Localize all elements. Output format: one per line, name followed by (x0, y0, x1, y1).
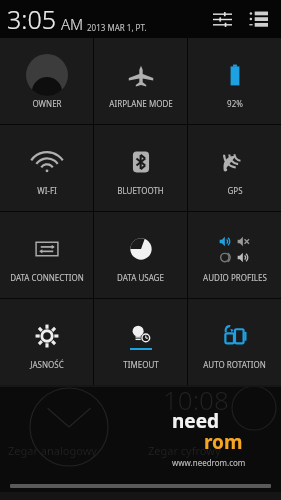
staticText: 10:08 (163, 382, 229, 417)
button[interactable]: Settings (207, 4, 237, 34)
staticText: Zegar cyfrowy (148, 443, 221, 458)
button[interactable]: DATA USAGE (94, 212, 187, 298)
staticText: BLUETOOTH (117, 185, 164, 196)
staticText: DATA CONNECTION (10, 272, 84, 283)
staticText: 2013 MAR 1, PT. (87, 22, 147, 33)
button[interactable]: 92% (188, 38, 281, 124)
staticText: GPS (227, 185, 243, 196)
button[interactable]: GPS (188, 125, 281, 211)
button[interactable]: JASNOŚĆ (0, 299, 93, 385)
staticText: AIRPLANE MODE (109, 98, 173, 109)
staticText: DATA USAGE (117, 272, 164, 283)
staticText: AUDIO PROFILES (203, 272, 267, 283)
staticText: JASNOŚĆ (30, 359, 64, 370)
button[interactable]: AUTO ROTATION (188, 299, 281, 385)
staticText: TIMEOUT (123, 359, 159, 370)
button[interactable]: BLUETOOTH (94, 125, 187, 211)
staticText: AUTO ROTATION (203, 359, 266, 370)
staticText: www.needrom.com (172, 457, 246, 468)
staticText: OWNER (32, 98, 62, 109)
staticText: Zegar analogowy (8, 443, 97, 458)
button[interactable]: TIMEOUT (94, 299, 187, 385)
staticText: rom (204, 429, 243, 455)
button[interactable]: AUDIO PROFILES (188, 212, 281, 298)
button[interactable]: WI-FI (0, 125, 93, 211)
button[interactable]: Notifications (243, 4, 273, 34)
staticText: AM (61, 14, 84, 34)
button[interactable]: DATA CONNECTION (0, 212, 93, 298)
button[interactable]: AIRPLANE MODE (94, 38, 187, 124)
staticText: 3:05 (7, 2, 56, 36)
staticText: WI-FI (37, 185, 57, 196)
staticText: need (172, 408, 220, 434)
button[interactable]: OWNER (0, 38, 93, 124)
staticText: 92% (227, 98, 243, 109)
